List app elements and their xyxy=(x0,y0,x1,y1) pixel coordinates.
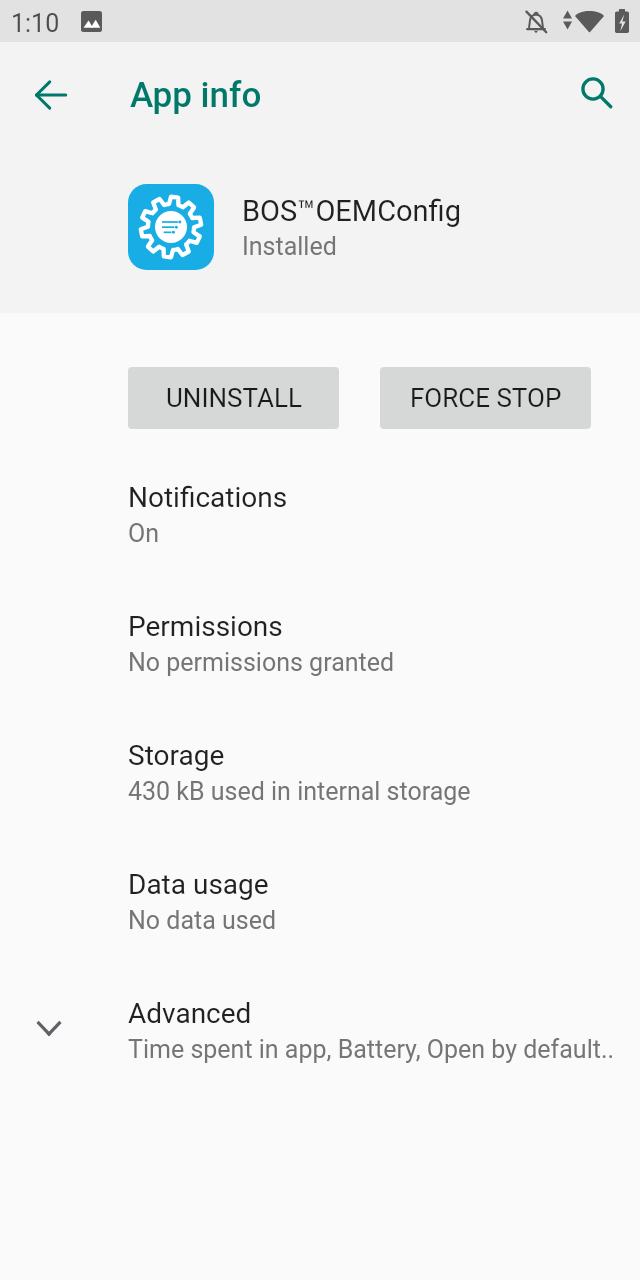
button[interactable]: Storage xyxy=(0,710,640,839)
staticText: Advanced xyxy=(128,997,252,1030)
button[interactable]: UNINSTALL xyxy=(128,367,339,429)
staticText: App info xyxy=(130,75,262,116)
staticText: No data used xyxy=(128,906,277,935)
button[interactable]: Permissions xyxy=(0,581,640,710)
staticText: Time spent in app, Battery, Open by defa… xyxy=(128,1035,615,1064)
staticText: Data usage xyxy=(128,868,269,901)
staticText: On xyxy=(128,519,160,548)
staticText: Permissions xyxy=(128,610,283,643)
staticText: 430 kB used in internal storage xyxy=(128,777,471,806)
staticText: Storage xyxy=(128,739,225,772)
staticText: 1:10 xyxy=(11,9,60,38)
staticText: UNINSTALL xyxy=(166,383,302,413)
staticText: Notifications xyxy=(128,481,288,514)
staticText: Installed xyxy=(242,232,337,261)
button[interactable]: Search xyxy=(568,64,626,122)
staticText: No permissions granted xyxy=(128,648,395,677)
staticText: BOS™OEMConfig xyxy=(242,194,461,228)
button[interactable]: Advanced xyxy=(0,968,640,1097)
button[interactable]: Data usage xyxy=(0,839,640,968)
staticText: FORCE STOP xyxy=(410,383,562,413)
button[interactable]: Navigate up xyxy=(22,66,80,124)
button[interactable]: FORCE STOP xyxy=(380,367,591,429)
button[interactable]: Notifications xyxy=(0,452,640,581)
